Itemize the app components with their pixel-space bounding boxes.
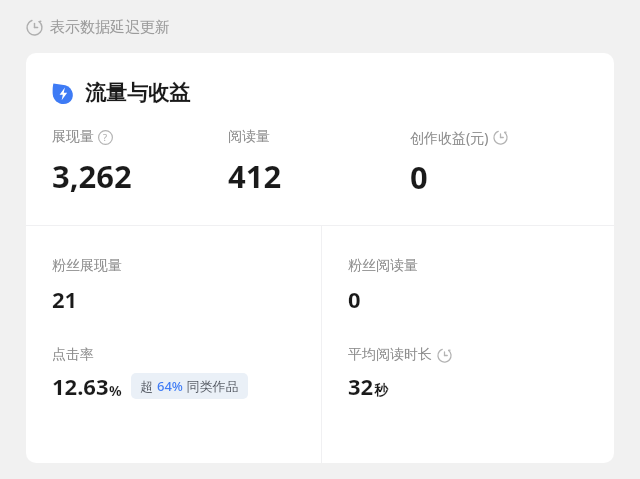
staticText: 3,262: [52, 155, 132, 197]
staticText: 21: [52, 284, 78, 314]
staticText: 0: [348, 284, 361, 314]
staticText: 点击率: [52, 346, 94, 364]
button[interactable]: 阅读量: [228, 128, 410, 197]
staticText: 展现量: [52, 128, 94, 146]
staticText: 粉丝展现量: [52, 257, 122, 275]
other: 数据延迟更新: [493, 130, 508, 145]
staticText: 创作收益(元): [410, 128, 489, 147]
staticText: 32: [348, 371, 374, 401]
button[interactable]: 平均阅读时长: [348, 346, 614, 401]
staticText: 0: [410, 156, 428, 198]
staticText: 表示数据延迟更新: [50, 18, 170, 37]
button[interactable]: 粉丝阅读量: [348, 257, 614, 314]
staticText: 超: [140, 377, 157, 395]
button[interactable]: 表示数据延迟更新: [26, 16, 170, 39]
button[interactable]: 粉丝展现量: [52, 257, 321, 314]
staticText: 秒: [374, 382, 388, 400]
button[interactable]: 点击率: [52, 346, 321, 401]
staticText: %: [109, 381, 122, 400]
staticText: 12.63: [52, 371, 109, 401]
other: 数据延迟更新: [437, 348, 452, 363]
staticText: 粉丝阅读量: [348, 257, 418, 275]
other: 展现量说明: [98, 130, 113, 145]
button[interactable]: 创作收益(元): [410, 128, 614, 198]
staticText: 64%: [157, 377, 183, 395]
staticText: 流量与收益: [85, 80, 190, 106]
staticText: 阅读量: [228, 128, 270, 146]
button[interactable]: 展现量: [52, 128, 228, 197]
button[interactable]: 流量与收益: [52, 80, 190, 106]
staticText: 412: [228, 155, 282, 197]
staticText: 同类作品: [183, 377, 239, 395]
staticText: 平均阅读时长: [348, 346, 432, 364]
staticText: ?: [103, 131, 108, 144]
